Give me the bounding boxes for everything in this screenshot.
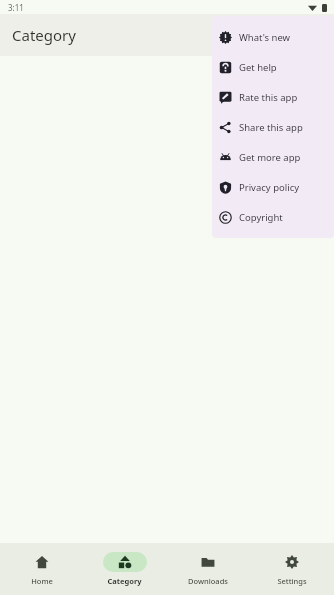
staticText: Share this app [239,121,303,134]
staticText: Home [31,576,53,586]
button[interactable]: Home [0,543,83,595]
staticText: Settings [277,576,307,586]
staticText: Category [107,576,142,586]
staticText: Rate this app [239,91,298,104]
button[interactable]: Category [83,543,166,595]
button[interactable]: Get help [212,52,334,82]
button[interactable]: Rate this app [212,82,334,112]
button[interactable]: Downloads [166,543,250,595]
staticText: Downloads [188,576,228,586]
button[interactable]: Get more app [212,142,334,172]
staticText: Privacy policy [239,181,300,194]
staticText: Copyright [239,211,283,224]
button[interactable]: Privacy policy [212,172,334,202]
button[interactable]: Share this app [212,112,334,142]
staticText: Get help [239,61,277,74]
staticText: Get more app [239,151,301,164]
staticText: 3:11 [8,2,24,13]
staticText: Category [12,25,76,45]
button[interactable]: Copyright [212,202,334,232]
button[interactable]: What's new [212,22,334,52]
staticText: What's new [239,31,291,44]
button[interactable]: Settings [250,543,334,595]
